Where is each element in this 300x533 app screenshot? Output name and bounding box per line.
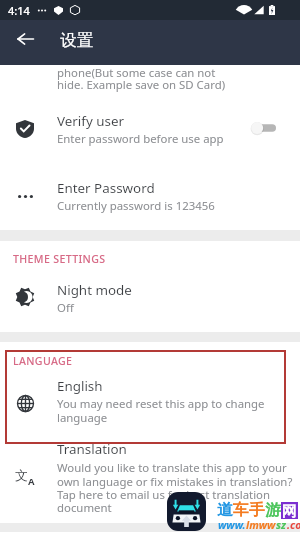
staticText: Translation bbox=[57, 440, 127, 458]
button[interactable]: Back bbox=[7, 21, 43, 57]
staticText: lmww bbox=[246, 518, 276, 532]
staticText: THEME SETTINGS bbox=[13, 252, 106, 266]
button[interactable] bbox=[0, 372, 300, 430]
staticText: English bbox=[57, 377, 103, 395]
staticText: 道 bbox=[217, 500, 233, 520]
button[interactable] bbox=[0, 275, 300, 321]
staticText: phone(But some case can not hide. Exampl… bbox=[57, 65, 226, 92]
staticText: Verify user bbox=[57, 112, 124, 130]
staticText: LANGUAGE bbox=[13, 354, 73, 368]
staticText: Off bbox=[57, 300, 74, 316]
staticText: 文 bbox=[15, 467, 28, 483]
staticText: Night mode bbox=[57, 281, 132, 299]
staticText: 设置 bbox=[60, 30, 93, 51]
button[interactable] bbox=[0, 104, 300, 156]
button[interactable] bbox=[0, 440, 300, 520]
staticText: 网 bbox=[282, 502, 297, 519]
staticText: Would you like to translate this app to … bbox=[57, 460, 293, 515]
button[interactable]: Verify user toggle bbox=[251, 121, 277, 135]
staticText: Enter password before use app bbox=[57, 131, 224, 147]
staticText: sz bbox=[276, 518, 287, 532]
staticText: 4:14 bbox=[8, 3, 30, 18]
staticText: www. bbox=[218, 518, 246, 532]
staticText: .com bbox=[287, 518, 300, 532]
staticText: 车 bbox=[233, 500, 249, 520]
staticText: 手 bbox=[249, 500, 265, 520]
staticText: Currently password is 123456 bbox=[57, 198, 215, 214]
staticText: You may need reset this app to change la… bbox=[57, 396, 265, 425]
button[interactable] bbox=[0, 173, 300, 225]
staticText: A bbox=[28, 475, 35, 488]
staticText: Enter Password bbox=[57, 179, 155, 197]
staticText: 游 bbox=[265, 500, 281, 520]
